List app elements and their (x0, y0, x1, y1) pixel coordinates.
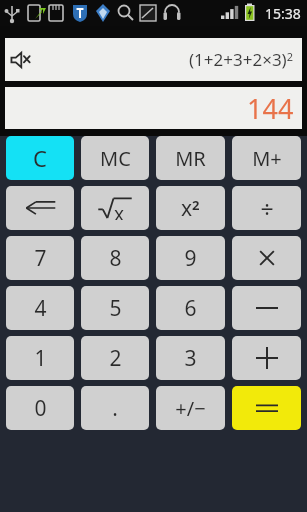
staticText: 6 (184, 294, 197, 323)
staticText: . (112, 394, 118, 423)
staticText: 144 (247, 90, 294, 127)
staticText: 4 (34, 294, 47, 323)
staticText: ÷ (260, 193, 274, 224)
staticText: 3 (184, 344, 197, 373)
button[interactable]: 7 (6, 236, 74, 280)
button[interactable]: 9 (156, 236, 225, 280)
staticText: +/− (175, 395, 206, 422)
button[interactable]: M+ (232, 136, 301, 180)
button[interactable]: Toggle sound (10, 48, 34, 72)
button[interactable]: Square (156, 186, 225, 230)
button[interactable]: Plus (232, 336, 301, 380)
staticText: x (114, 201, 125, 220)
staticText: 2 (109, 344, 122, 373)
staticText: 0 (34, 394, 47, 423)
staticText: 8 (109, 244, 122, 273)
button[interactable]: Multiply (232, 236, 301, 280)
button[interactable]: MR (156, 136, 225, 180)
button[interactable]: . (81, 386, 149, 430)
button[interactable]: Minus (232, 286, 301, 330)
button[interactable]: Backspace (6, 186, 74, 230)
staticText: 7 (34, 244, 47, 273)
staticText: 5 (109, 294, 122, 323)
staticText: MC (100, 145, 131, 172)
button[interactable]: Equals (232, 386, 301, 430)
staticText: 1 (34, 344, 47, 373)
button[interactable]: MC (81, 136, 149, 180)
button[interactable]: Divide (232, 186, 301, 230)
staticText: 15:38 (265, 4, 301, 23)
staticText: x2 (181, 194, 200, 223)
button[interactable]: 3 (156, 336, 225, 380)
button[interactable]: Square root (81, 186, 149, 230)
staticText: (1+2+3+2×3)2 (189, 48, 294, 71)
button[interactable]: 6 (156, 286, 225, 330)
button[interactable]: 2 (81, 336, 149, 380)
staticText: M+ (252, 145, 282, 172)
staticText: MR (175, 145, 206, 172)
staticText: 9 (184, 244, 197, 273)
button[interactable]: Change sign (156, 386, 225, 430)
staticText: C (33, 143, 47, 173)
button[interactable]: 8 (81, 236, 149, 280)
button[interactable]: C (6, 136, 74, 180)
button[interactable]: 1 (6, 336, 74, 380)
button[interactable]: 0 (6, 386, 74, 430)
button[interactable]: 5 (81, 286, 149, 330)
button[interactable]: 4 (6, 286, 74, 330)
